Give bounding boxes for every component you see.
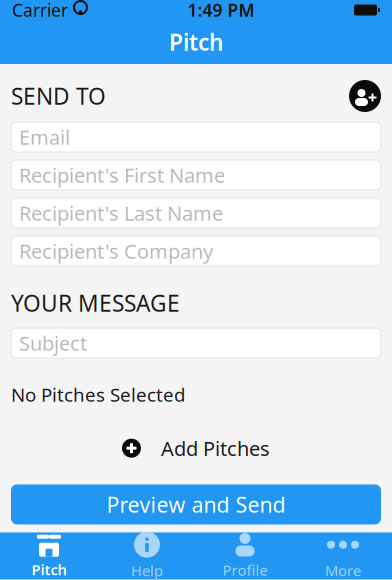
staticText: Preview and Send [106, 490, 285, 519]
staticText: Recipient's Company [19, 238, 213, 264]
staticText: Profile [222, 560, 267, 580]
button[interactable]: More [294, 532, 392, 579]
staticText: No Pitches Selected [11, 382, 185, 407]
staticText: Recipient's Last Name [19, 200, 223, 226]
staticText: SEND TO [11, 81, 106, 111]
staticText: Help [131, 561, 163, 580]
button[interactable]: Add Pitches [108, 427, 284, 469]
staticText: 1:49 PM [187, 0, 254, 21]
staticText: More [325, 561, 361, 580]
staticText: Add Pitches [161, 435, 270, 461]
button[interactable]: Profile [196, 532, 294, 579]
staticText: YOUR MESSAGE [11, 288, 180, 318]
staticText: Pitch [31, 560, 66, 579]
staticText: Pitch [169, 27, 223, 57]
button[interactable]: Preview and Send [11, 484, 381, 524]
button[interactable]: Help [98, 532, 196, 579]
button[interactable]: Add contact [349, 80, 381, 112]
staticText: Carrier [12, 0, 68, 21]
staticText: Recipient's First Name [19, 162, 225, 188]
staticText: Subject [19, 330, 87, 356]
staticText: Email [19, 124, 70, 150]
button[interactable]: Pitch [0, 532, 98, 579]
